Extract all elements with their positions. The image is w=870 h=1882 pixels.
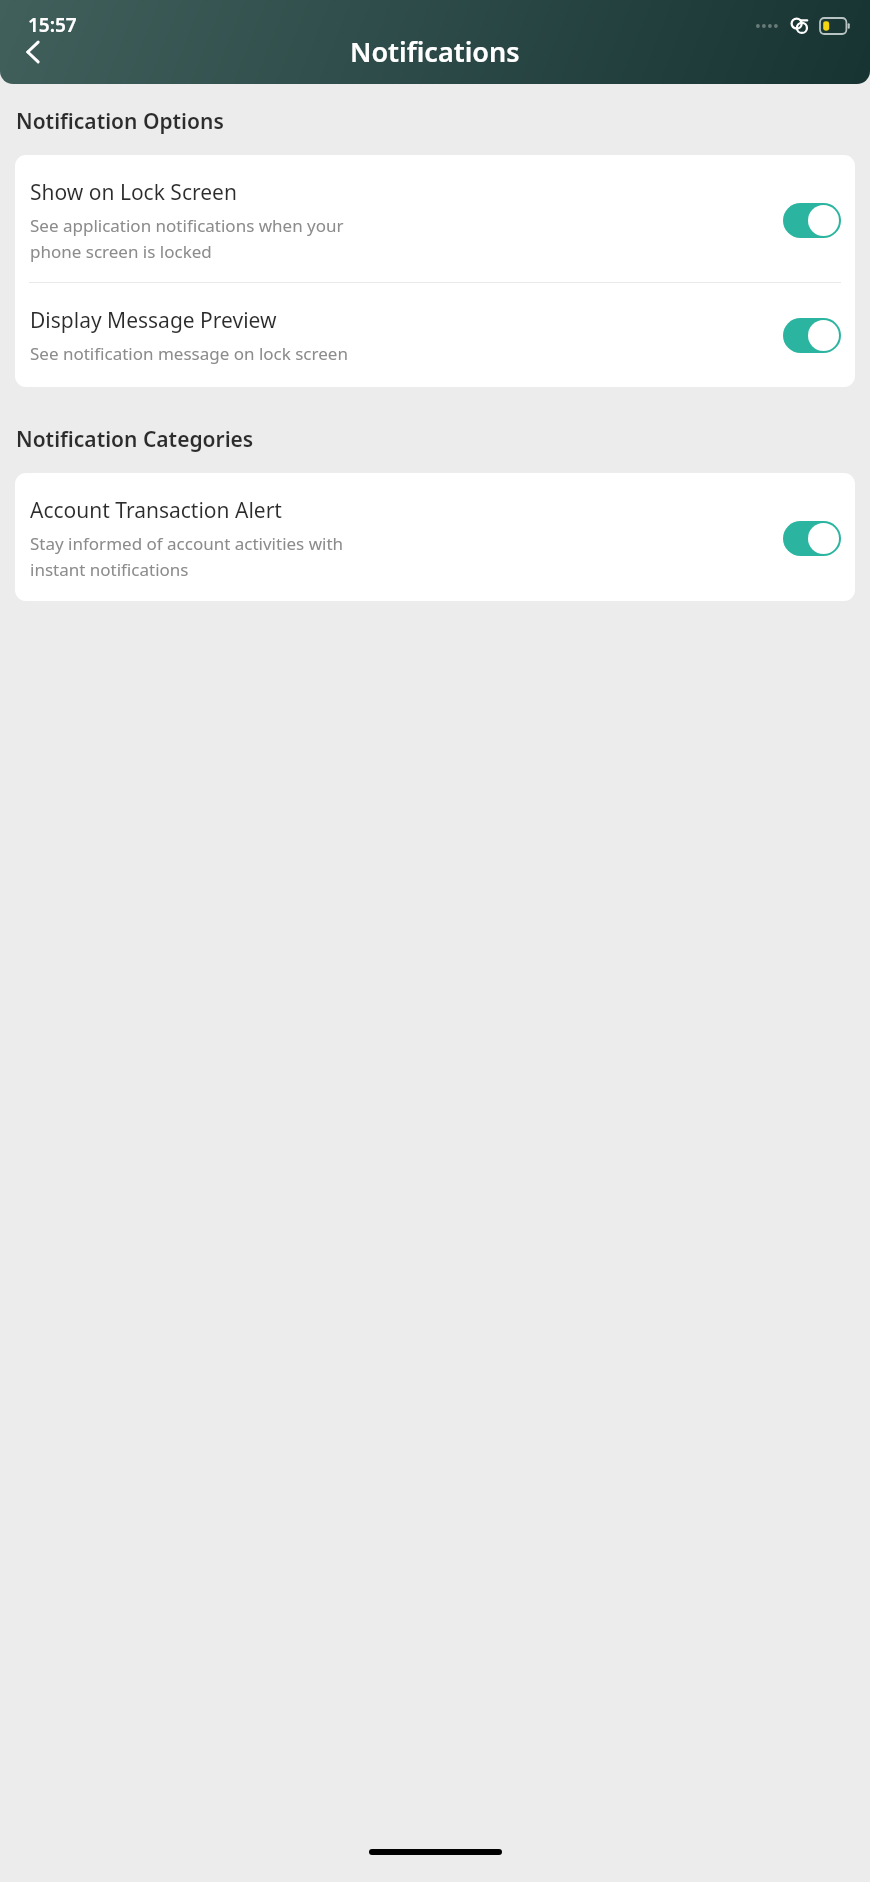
staticText: See application notifications when your …	[30, 214, 344, 263]
staticText: Notifications	[350, 33, 520, 70]
button[interactable]: Toggle on	[783, 203, 841, 238]
button[interactable]: Account Transaction Alert	[15, 473, 855, 601]
staticText: 15:57	[28, 12, 77, 38]
staticText: Account Transaction Alert	[30, 496, 282, 525]
button[interactable]: Show on Lock Screen	[15, 155, 855, 282]
button[interactable]: Toggle on	[783, 318, 841, 353]
staticText: Show on Lock Screen	[30, 178, 237, 207]
button[interactable]: Toggle on	[783, 521, 841, 556]
staticText: Notification Categories	[16, 425, 254, 454]
staticText: Display Message Preview	[30, 306, 277, 335]
staticText: See notification message on lock screen	[30, 342, 348, 365]
button[interactable]: Back	[8, 26, 60, 78]
button[interactable]: Display Message Preview	[15, 283, 855, 387]
other: Linked	[788, 14, 812, 38]
staticText: Stay informed of account activities with…	[30, 532, 344, 581]
staticText: Notification Options	[16, 107, 224, 136]
